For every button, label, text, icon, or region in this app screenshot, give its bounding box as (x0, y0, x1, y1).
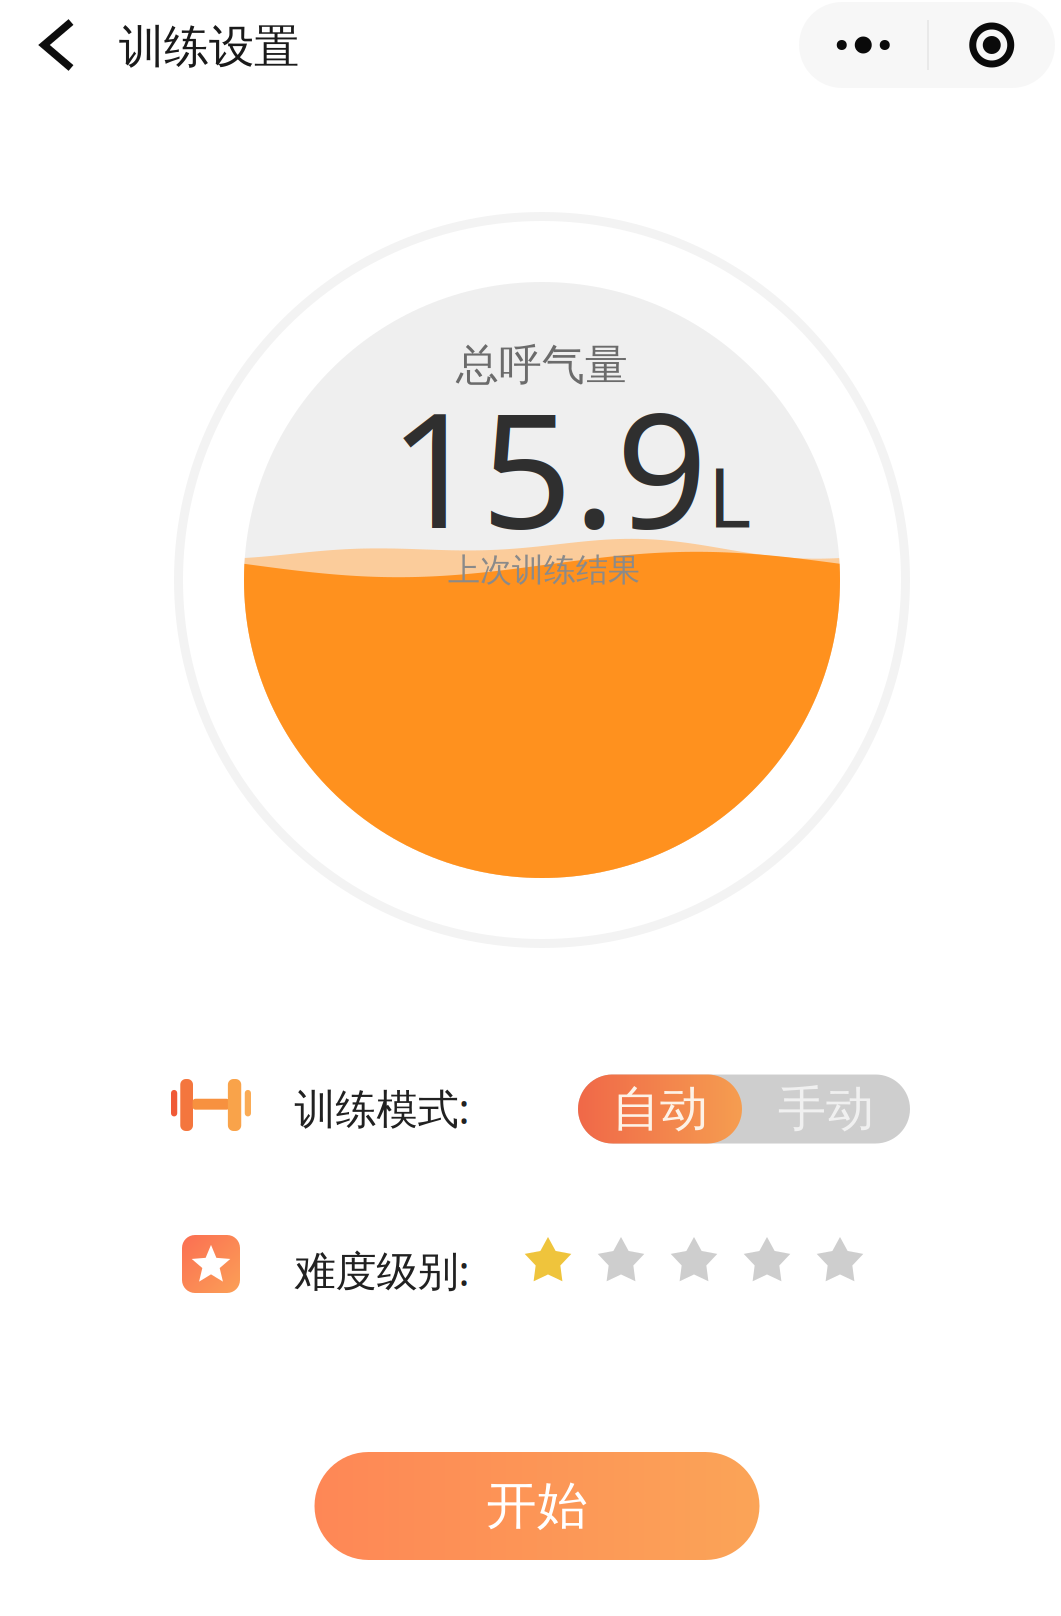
button[interactable]: Difficulty 1 (522, 1235, 573, 1284)
button[interactable]: Difficulty 4 (741, 1235, 792, 1284)
staticText: 15.9 (389, 360, 708, 572)
staticText: 训练设置 (119, 19, 299, 75)
staticText: L (708, 440, 751, 550)
button[interactable]: 自动 (578, 1074, 742, 1143)
button[interactable]: Back (0, 0, 115, 90)
button[interactable]: 手动 (742, 1074, 910, 1143)
button[interactable]: Difficulty 2 (595, 1235, 646, 1284)
staticText: 上次训练结果 (448, 550, 640, 590)
button[interactable]: Difficulty 5 (814, 1235, 865, 1284)
staticText: 难度级别: (294, 1243, 469, 1297)
button[interactable]: Close mini program (929, 2, 1055, 88)
staticText: 开始 (486, 1475, 588, 1537)
staticText: 手动 (778, 1079, 874, 1138)
button[interactable]: 开始 (314, 1452, 759, 1560)
button[interactable]: More options (799, 2, 927, 88)
staticText: 训练模式: (294, 1081, 469, 1135)
staticText: 自动 (612, 1079, 708, 1138)
staticText: 总呼气量 (456, 339, 628, 391)
button[interactable]: Difficulty 3 (668, 1235, 719, 1284)
